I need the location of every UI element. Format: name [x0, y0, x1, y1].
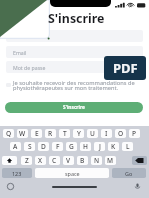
button[interactable]: X: [35, 156, 46, 165]
button[interactable]: Email: [6, 46, 143, 58]
staticText: Z: [25, 156, 29, 165]
button[interactable]: I: [101, 129, 112, 138]
other: Dictate: [134, 183, 141, 190]
staticText: C: [52, 156, 57, 165]
staticText: Email: [13, 49, 27, 56]
staticText: L: [126, 142, 130, 151]
staticText: S'inscrire: [48, 10, 105, 27]
staticText: Mot de passe: [13, 64, 46, 71]
button[interactable]: N: [91, 156, 102, 165]
button[interactable]: space: [35, 168, 109, 178]
staticText: H: [83, 142, 88, 151]
button[interactable]: L: [122, 142, 133, 151]
button[interactable]: 123: [2, 168, 32, 178]
button[interactable]: Y: [73, 129, 84, 138]
staticText: E: [35, 129, 39, 138]
staticText: N: [94, 156, 100, 165]
button[interactable]: E: [31, 129, 42, 138]
staticText: W: [19, 129, 26, 138]
button[interactable]: D: [38, 142, 49, 151]
button[interactable]: T: [59, 129, 70, 138]
button[interactable]: Z: [21, 156, 32, 165]
staticText: R: [48, 129, 53, 138]
button[interactable]: U: [87, 129, 98, 138]
button[interactable]: Backspace: [132, 156, 147, 165]
button[interactable]: Go: [112, 168, 146, 178]
button[interactable]: S: [24, 142, 35, 151]
staticText: D: [41, 142, 46, 151]
staticText: M: [107, 156, 114, 165]
staticText: X: [38, 156, 43, 165]
staticText: Go: [125, 170, 133, 177]
button[interactable]: [6, 30, 143, 42]
button[interactable]: Je souhaite recevoir des recommandations…: [5, 78, 144, 90]
staticText: PDF: [113, 59, 138, 77]
staticText: K: [111, 142, 116, 151]
staticText: O: [118, 129, 124, 138]
button[interactable]: B: [77, 156, 88, 165]
staticText: Je souhaite recevoir des recommandations…: [13, 79, 141, 91]
staticText: V: [66, 156, 71, 165]
staticText: P: [132, 129, 137, 138]
staticText: S'inscrire: [63, 104, 85, 111]
button[interactable]: S'inscrire: [5, 102, 143, 113]
staticText: A: [13, 142, 18, 151]
button[interactable]: J: [94, 142, 105, 151]
staticText: S: [28, 142, 32, 151]
staticText: Y: [77, 129, 81, 138]
button[interactable]: Q: [3, 129, 14, 138]
button[interactable]: A: [10, 142, 21, 151]
button[interactable]: P: [129, 129, 140, 138]
staticText: Q: [6, 129, 12, 138]
button[interactable]: R: [45, 129, 56, 138]
other: Emoji keyboard: [6, 183, 15, 190]
button[interactable]: H: [80, 142, 91, 151]
button[interactable]: F: [52, 142, 63, 151]
staticText: U: [90, 129, 95, 138]
button[interactable]: V: [63, 156, 74, 165]
button[interactable]: O: [115, 129, 126, 138]
staticText: space: [65, 170, 80, 177]
staticText: G: [69, 142, 74, 151]
button[interactable]: W: [17, 129, 28, 138]
button[interactable]: G: [66, 142, 77, 151]
button[interactable]: C: [49, 156, 60, 165]
staticText: T: [63, 129, 67, 138]
button[interactable]: Mot de passe: [6, 61, 143, 73]
button[interactable]: M: [105, 156, 116, 165]
staticText: J: [99, 142, 101, 151]
staticText: I: [105, 129, 108, 138]
staticText: 123: [12, 170, 22, 177]
button[interactable]: Shift: [2, 156, 17, 165]
staticText: B: [80, 156, 85, 165]
staticText: F: [56, 142, 60, 151]
button[interactable]: K: [108, 142, 119, 151]
